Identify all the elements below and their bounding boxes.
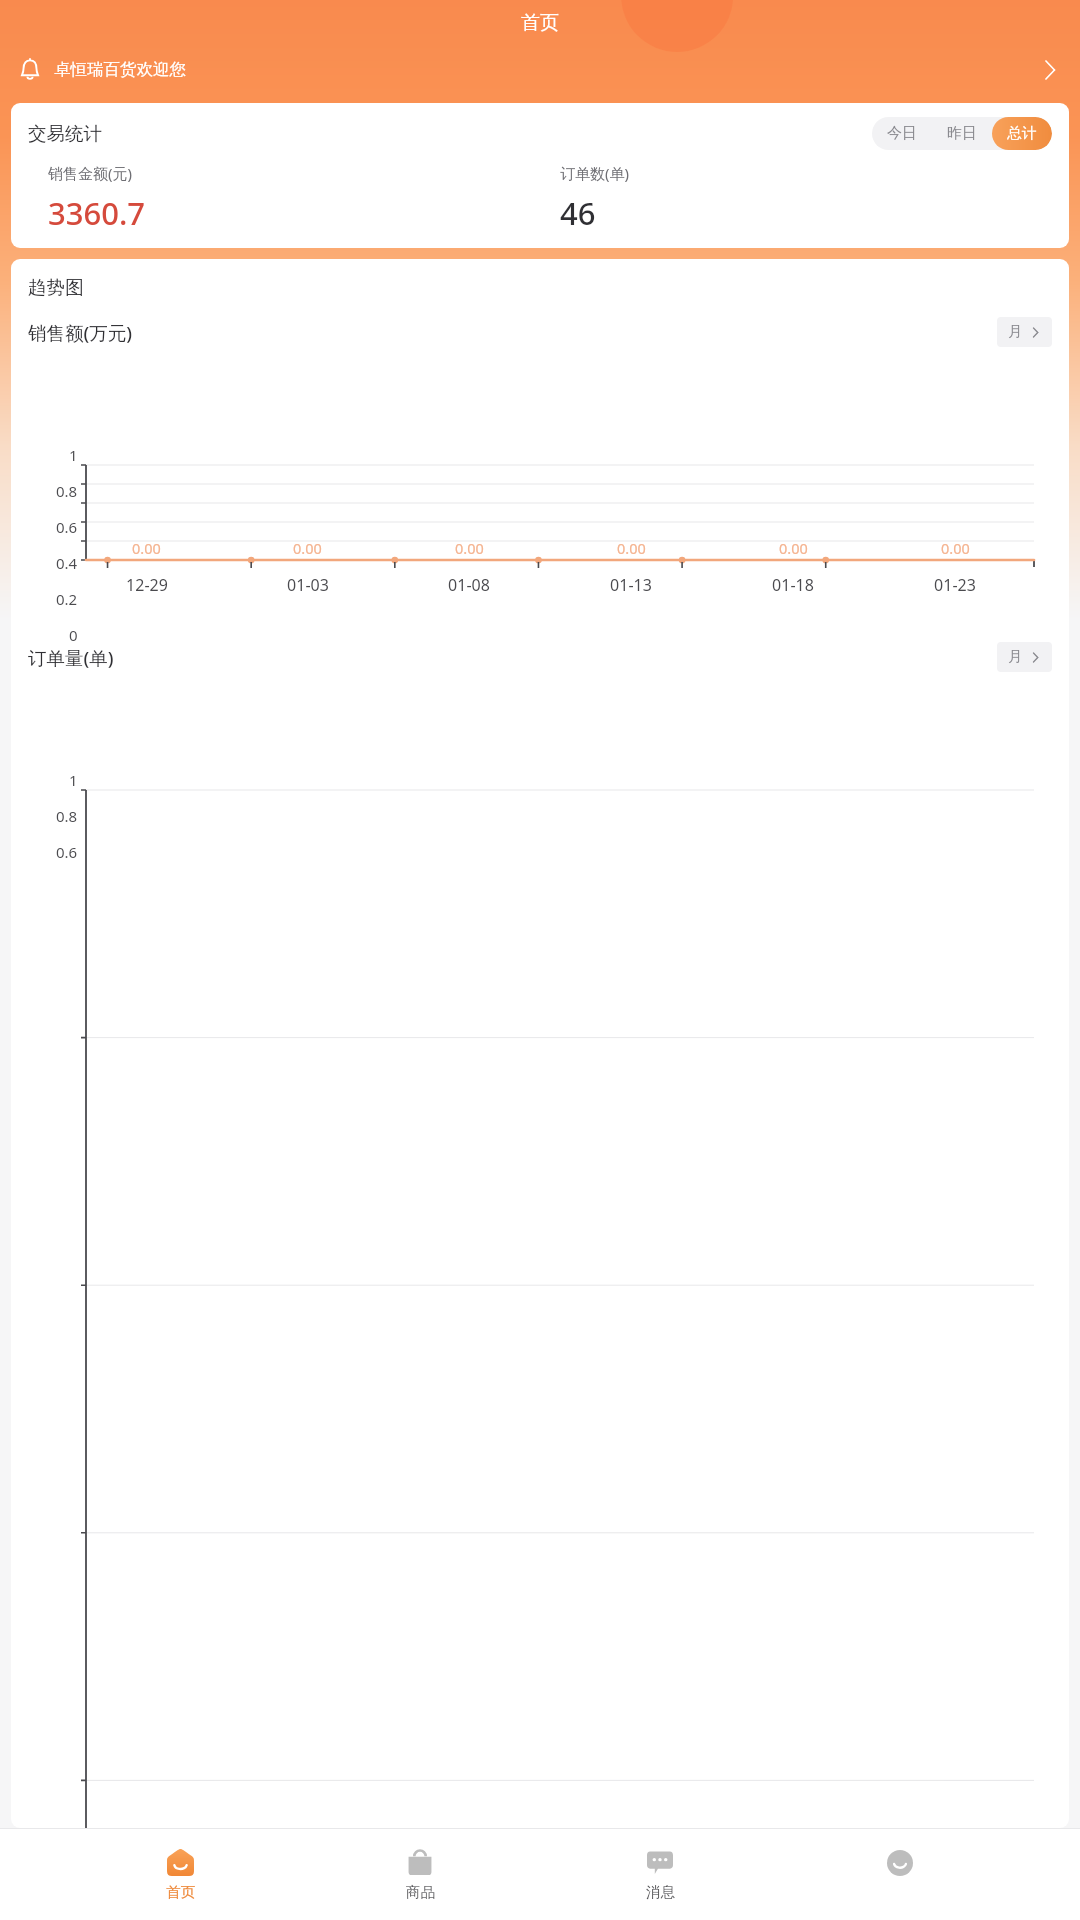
staticText: 消息 bbox=[646, 1883, 675, 1901]
button[interactable]: 首页 bbox=[120, 1839, 240, 1909]
staticText: 0.8 bbox=[56, 806, 78, 826]
staticText: 0.00 bbox=[455, 538, 484, 558]
button[interactable]: 交易统计 bbox=[11, 103, 1069, 248]
staticText: 0.6 bbox=[56, 842, 78, 862]
staticText: 0.4 bbox=[56, 553, 78, 573]
staticText: 12-29 bbox=[126, 574, 168, 596]
staticText: 0.00 bbox=[779, 538, 808, 558]
staticText: 月 bbox=[1008, 323, 1022, 341]
staticText: 3360.7 bbox=[48, 192, 146, 234]
button[interactable]: 今日 bbox=[872, 117, 932, 150]
staticText: 01-13 bbox=[610, 574, 652, 596]
button[interactable]: 月 bbox=[997, 642, 1052, 672]
button[interactable]: 总计 bbox=[992, 117, 1052, 150]
staticText: 商品 bbox=[406, 1883, 435, 1901]
staticText: 销售金额(元) bbox=[48, 163, 133, 183]
staticText: 01-08 bbox=[448, 574, 490, 596]
staticText: 今日 bbox=[887, 124, 917, 143]
staticText: 01-23 bbox=[934, 574, 976, 596]
staticText: 昨日 bbox=[947, 124, 977, 143]
staticText: 01-18 bbox=[772, 574, 814, 596]
button[interactable]: Notifications bbox=[13, 53, 47, 87]
staticText: 0.00 bbox=[293, 538, 322, 558]
staticText: 趋势图 bbox=[28, 276, 84, 299]
staticText: 0 bbox=[69, 625, 78, 645]
staticText: 首页 bbox=[521, 11, 559, 35]
staticText: 0.6 bbox=[56, 517, 78, 537]
staticText: 0.2 bbox=[56, 589, 78, 609]
button[interactable]: My account bbox=[840, 1840, 960, 1909]
staticText: 销售额(万元) bbox=[28, 320, 133, 345]
staticText: 首页 bbox=[166, 1883, 195, 1901]
staticText: 01-03 bbox=[287, 574, 329, 596]
button[interactable]: 昨日 bbox=[932, 117, 992, 150]
staticText: 0.8 bbox=[56, 481, 78, 501]
staticText: 月 bbox=[1008, 648, 1022, 666]
staticText: 46 bbox=[560, 192, 596, 234]
staticText: 1 bbox=[69, 445, 78, 465]
staticText: 0.00 bbox=[617, 538, 646, 558]
staticText: 总计 bbox=[1007, 124, 1037, 143]
button[interactable]: 月 bbox=[997, 317, 1052, 347]
button[interactable]: 消息 bbox=[600, 1839, 720, 1909]
staticText: 订单量(单) bbox=[28, 645, 114, 670]
staticText: 1 bbox=[69, 770, 78, 790]
staticText: 0.00 bbox=[941, 538, 970, 558]
staticText: 订单数(单) bbox=[560, 163, 630, 183]
button[interactable]: More bbox=[1033, 53, 1067, 87]
staticText: 交易统计 bbox=[28, 122, 102, 145]
staticText: 卓恒瑞百货欢迎您 bbox=[54, 59, 186, 80]
button[interactable]: 商品 bbox=[360, 1839, 480, 1909]
staticText: 0.00 bbox=[132, 538, 161, 558]
